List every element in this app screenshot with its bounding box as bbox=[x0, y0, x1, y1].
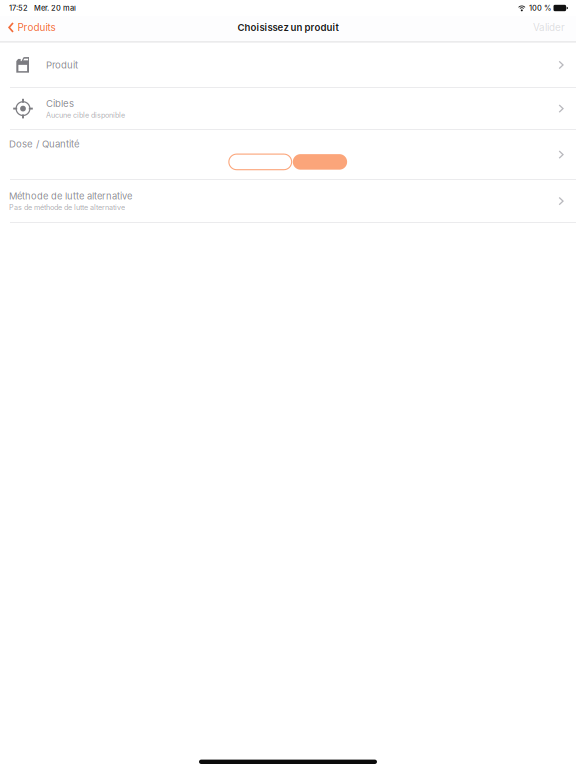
staticText: Produits bbox=[17, 21, 55, 33]
button[interactable]: Produit bbox=[0, 43, 576, 87]
staticText: Pas de méthode de lutte alternative bbox=[9, 203, 125, 212]
button[interactable]: Cibles bbox=[0, 88, 576, 129]
button[interactable]: Dose / Quantité bbox=[0, 130, 576, 179]
button[interactable]: Méthode de lutte alternative bbox=[0, 180, 576, 222]
staticText: Méthode de lutte alternative bbox=[9, 190, 132, 202]
staticText: Aucune cible disponible bbox=[46, 111, 125, 119]
staticText: Dose / Quantité bbox=[9, 138, 80, 150]
staticText: Mer. 20 mai bbox=[34, 3, 76, 12]
button[interactable]: Valider bbox=[533, 16, 576, 41]
staticText: Choisissez un produit bbox=[237, 22, 338, 33]
staticText: 17:52 bbox=[9, 3, 28, 12]
button[interactable]: Produits bbox=[0, 16, 61, 41]
staticText: Valider bbox=[533, 21, 565, 33]
staticText: Cibles bbox=[46, 98, 74, 109]
staticText: Produit bbox=[46, 59, 78, 71]
staticText: 100 % bbox=[529, 3, 551, 12]
